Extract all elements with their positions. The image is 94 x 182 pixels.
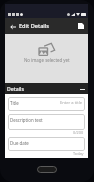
staticText: 0/200 bbox=[73, 130, 84, 135]
button[interactable]: Due date bbox=[8, 137, 85, 151]
staticText: Details bbox=[7, 85, 25, 92]
button[interactable]: Title bbox=[8, 97, 85, 111]
staticText: Edit Details bbox=[19, 22, 50, 30]
staticText: Due date bbox=[10, 140, 29, 146]
staticText: Enter a title bbox=[60, 100, 83, 106]
staticText: Title bbox=[10, 100, 19, 106]
button[interactable]: Save bbox=[76, 21, 86, 31]
button[interactable]: Home bbox=[37, 166, 57, 173]
staticText: Description text bbox=[10, 117, 43, 123]
staticText: Today bbox=[73, 151, 84, 156]
button[interactable]: Collapse section bbox=[78, 85, 86, 93]
button[interactable]: Back bbox=[7, 21, 18, 32]
staticText: No image selected yet bbox=[24, 57, 70, 63]
button[interactable]: Description text bbox=[8, 114, 85, 130]
